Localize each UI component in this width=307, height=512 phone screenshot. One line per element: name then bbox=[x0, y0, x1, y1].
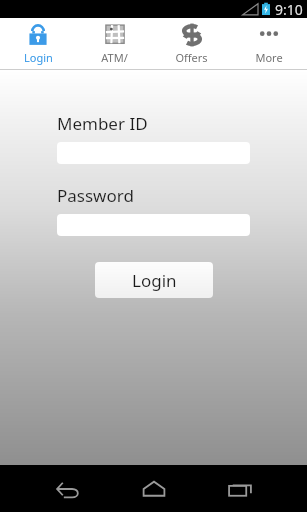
staticText: ATM/ bbox=[101, 50, 128, 65]
button[interactable]: Home bbox=[130, 465, 178, 512]
staticText: Member ID bbox=[57, 112, 148, 135]
button[interactable]: Recents bbox=[216, 465, 264, 512]
staticText: More bbox=[255, 50, 283, 65]
button[interactable]: Login bbox=[95, 262, 213, 298]
button[interactable]: Back bbox=[44, 465, 92, 512]
staticText: Password bbox=[57, 184, 134, 207]
staticText: Login bbox=[24, 50, 53, 65]
button[interactable]: Login bbox=[0, 18, 76, 69]
staticText: Login bbox=[132, 269, 177, 292]
staticText: 9:10 bbox=[275, 0, 303, 18]
button[interactable]: ATM/ bbox=[76, 18, 153, 69]
button[interactable]: More bbox=[230, 18, 307, 69]
button[interactable]: Offers bbox=[153, 18, 230, 69]
staticText: Offers bbox=[175, 50, 208, 65]
